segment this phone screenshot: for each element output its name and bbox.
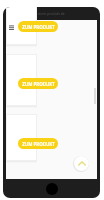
button[interactable]: ZUM PRODUKT bbox=[18, 78, 58, 89]
button[interactable]: Scroll to top bbox=[74, 156, 89, 171]
button[interactable]: ZUM PRODUKT bbox=[18, 21, 58, 32]
button[interactable]: Menu bbox=[6, 20, 20, 34]
staticText: ZUM PRODUKT bbox=[22, 24, 55, 30]
button[interactable]: ZUM PRODUKT bbox=[18, 138, 58, 149]
staticText: ZUM PRODUKT bbox=[22, 81, 55, 87]
button[interactable] bbox=[6, 114, 37, 161]
staticText: mein-produkt.de bbox=[38, 11, 65, 16]
button[interactable] bbox=[6, 7, 37, 45]
staticText: ZUM PRODUKT bbox=[22, 141, 55, 147]
button[interactable] bbox=[6, 54, 37, 106]
